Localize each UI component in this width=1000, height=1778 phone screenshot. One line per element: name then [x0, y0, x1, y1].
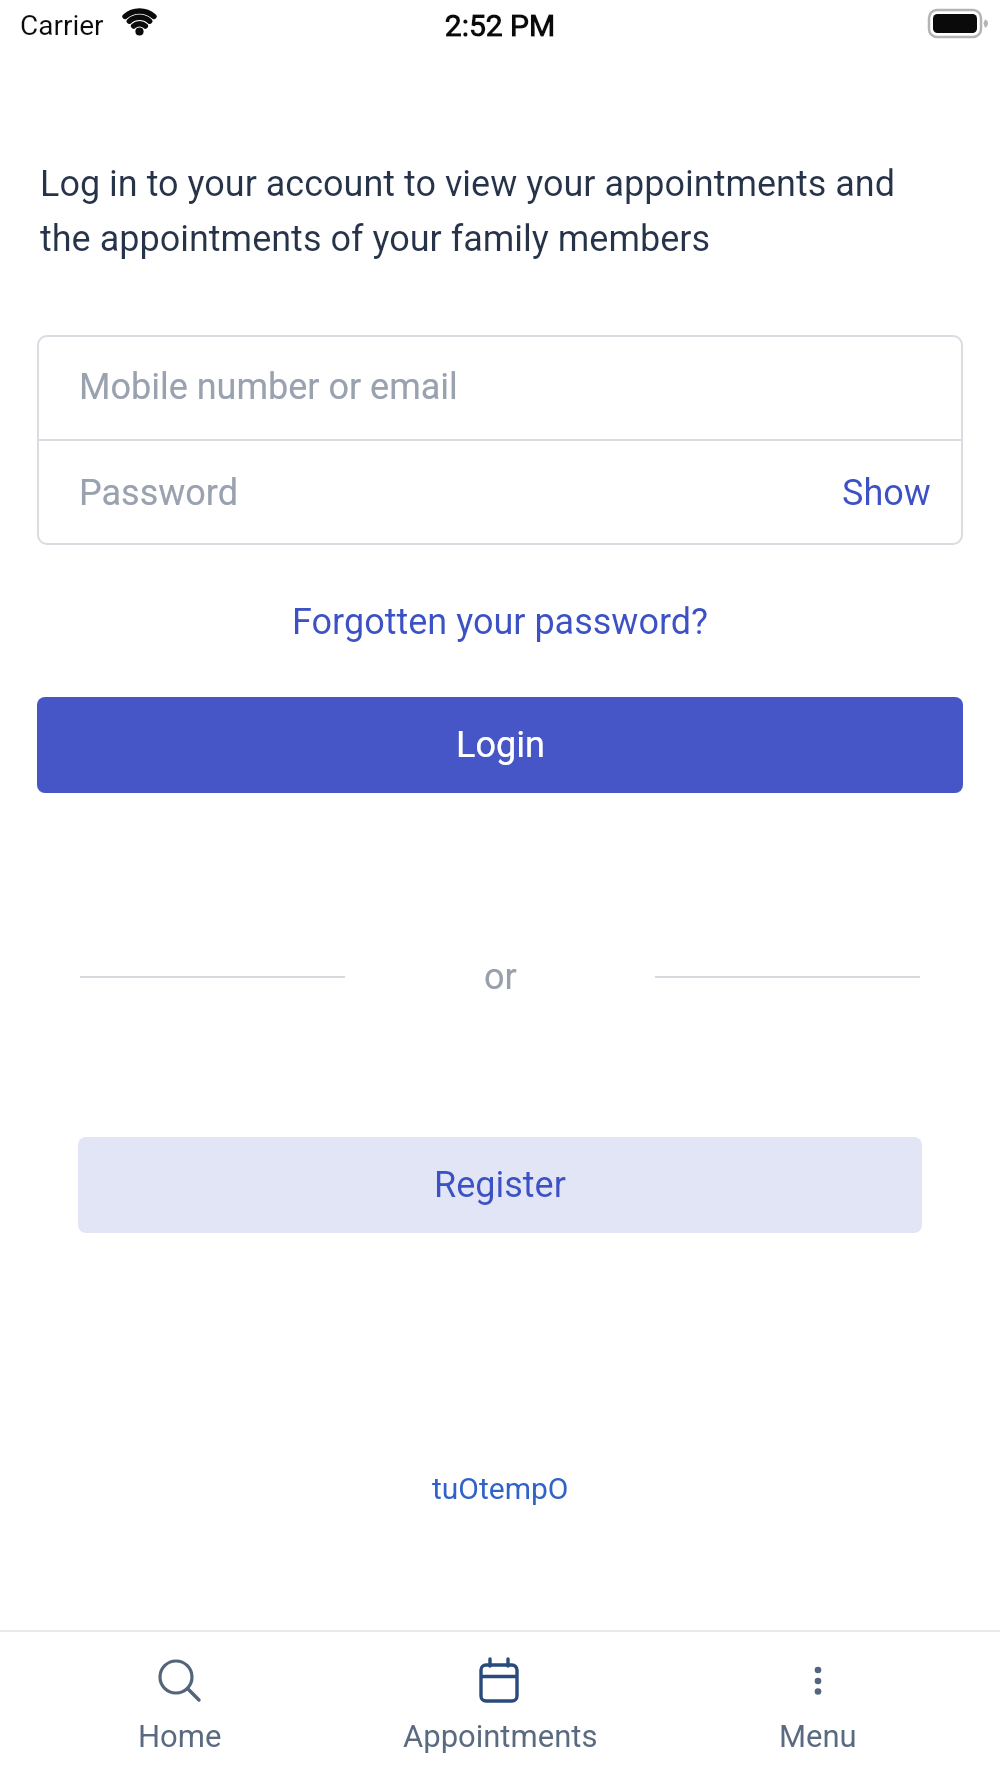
button[interactable]: Menu	[718, 1648, 918, 1770]
staticText: 2:52 PM	[0, 8, 1000, 43]
staticText: Carrier	[20, 9, 104, 42]
button[interactable]: Appointments	[380, 1648, 620, 1770]
staticText: Mobile number or email	[79, 366, 458, 408]
staticText: or	[484, 956, 517, 998]
staticText: Password	[79, 472, 239, 514]
staticText: Login	[456, 724, 545, 766]
staticText: Show	[842, 472, 931, 514]
button[interactable]: Forgotten your password?	[292, 601, 709, 643]
staticText: Register	[434, 1164, 566, 1206]
button[interactable]: Home	[80, 1648, 280, 1770]
button[interactable]: tuOtempO	[432, 1471, 569, 1506]
staticText: tuOtempO	[432, 1471, 569, 1506]
staticText: Forgotten your password?	[292, 601, 709, 643]
button[interactable]: Login	[37, 697, 963, 793]
button[interactable]: Mobile number or email	[37, 335, 963, 439]
button[interactable]: Password	[37, 441, 963, 545]
button[interactable]: Register	[78, 1137, 922, 1233]
staticText: Appointments	[403, 1718, 598, 1754]
staticText: Menu	[779, 1718, 857, 1754]
staticText: Log in to your account to view your appo…	[40, 163, 970, 260]
button[interactable]: Show	[842, 472, 931, 514]
staticText: Home	[138, 1718, 222, 1754]
